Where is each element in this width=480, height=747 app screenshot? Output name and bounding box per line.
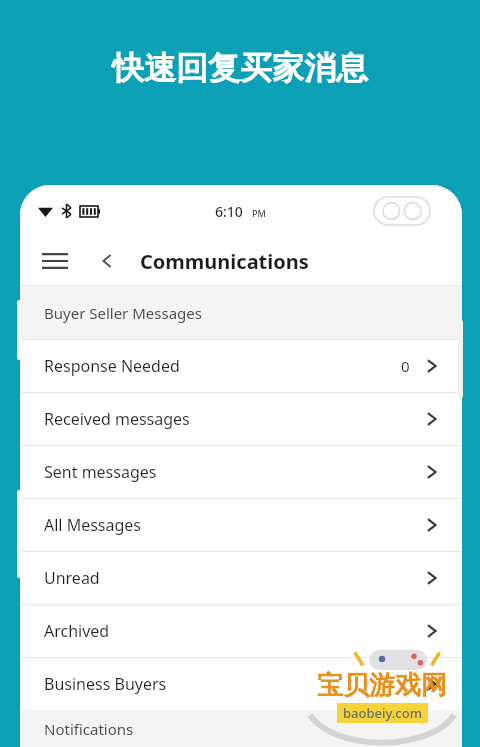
button[interactable]: Archived bbox=[20, 605, 462, 657]
staticText: All Messages bbox=[44, 514, 424, 536]
staticText: PM bbox=[252, 207, 266, 219]
staticText: Archived bbox=[44, 620, 424, 642]
button[interactable]: Back bbox=[86, 240, 128, 282]
button[interactable]: Menu bbox=[34, 240, 76, 282]
button[interactable]: Response Needed bbox=[20, 340, 462, 392]
button[interactable]: Sent messages bbox=[20, 446, 462, 498]
button[interactable]: Received messages bbox=[20, 393, 462, 445]
button[interactable]: Unread bbox=[20, 552, 462, 604]
staticText: 宝贝游戏网 bbox=[317, 669, 447, 702]
staticText: Unread bbox=[44, 567, 424, 589]
staticText: Buyer Seller Messages bbox=[44, 303, 202, 323]
staticText: 快速回复买家消息 bbox=[0, 48, 480, 88]
staticText: 0 bbox=[401, 356, 410, 376]
staticText: baobeiy.com bbox=[343, 704, 422, 722]
button[interactable]: All Messages bbox=[20, 499, 462, 551]
staticText: Business Buyers bbox=[44, 673, 424, 695]
staticText: Notifications bbox=[44, 719, 134, 739]
staticText: Communications bbox=[140, 248, 309, 275]
staticText: Received messages bbox=[44, 408, 424, 430]
staticText: Response Needed bbox=[44, 355, 401, 377]
staticText: Sent messages bbox=[44, 461, 424, 483]
button[interactable]: Business Buyers bbox=[20, 658, 462, 710]
staticText: 6:10 bbox=[215, 202, 243, 221]
